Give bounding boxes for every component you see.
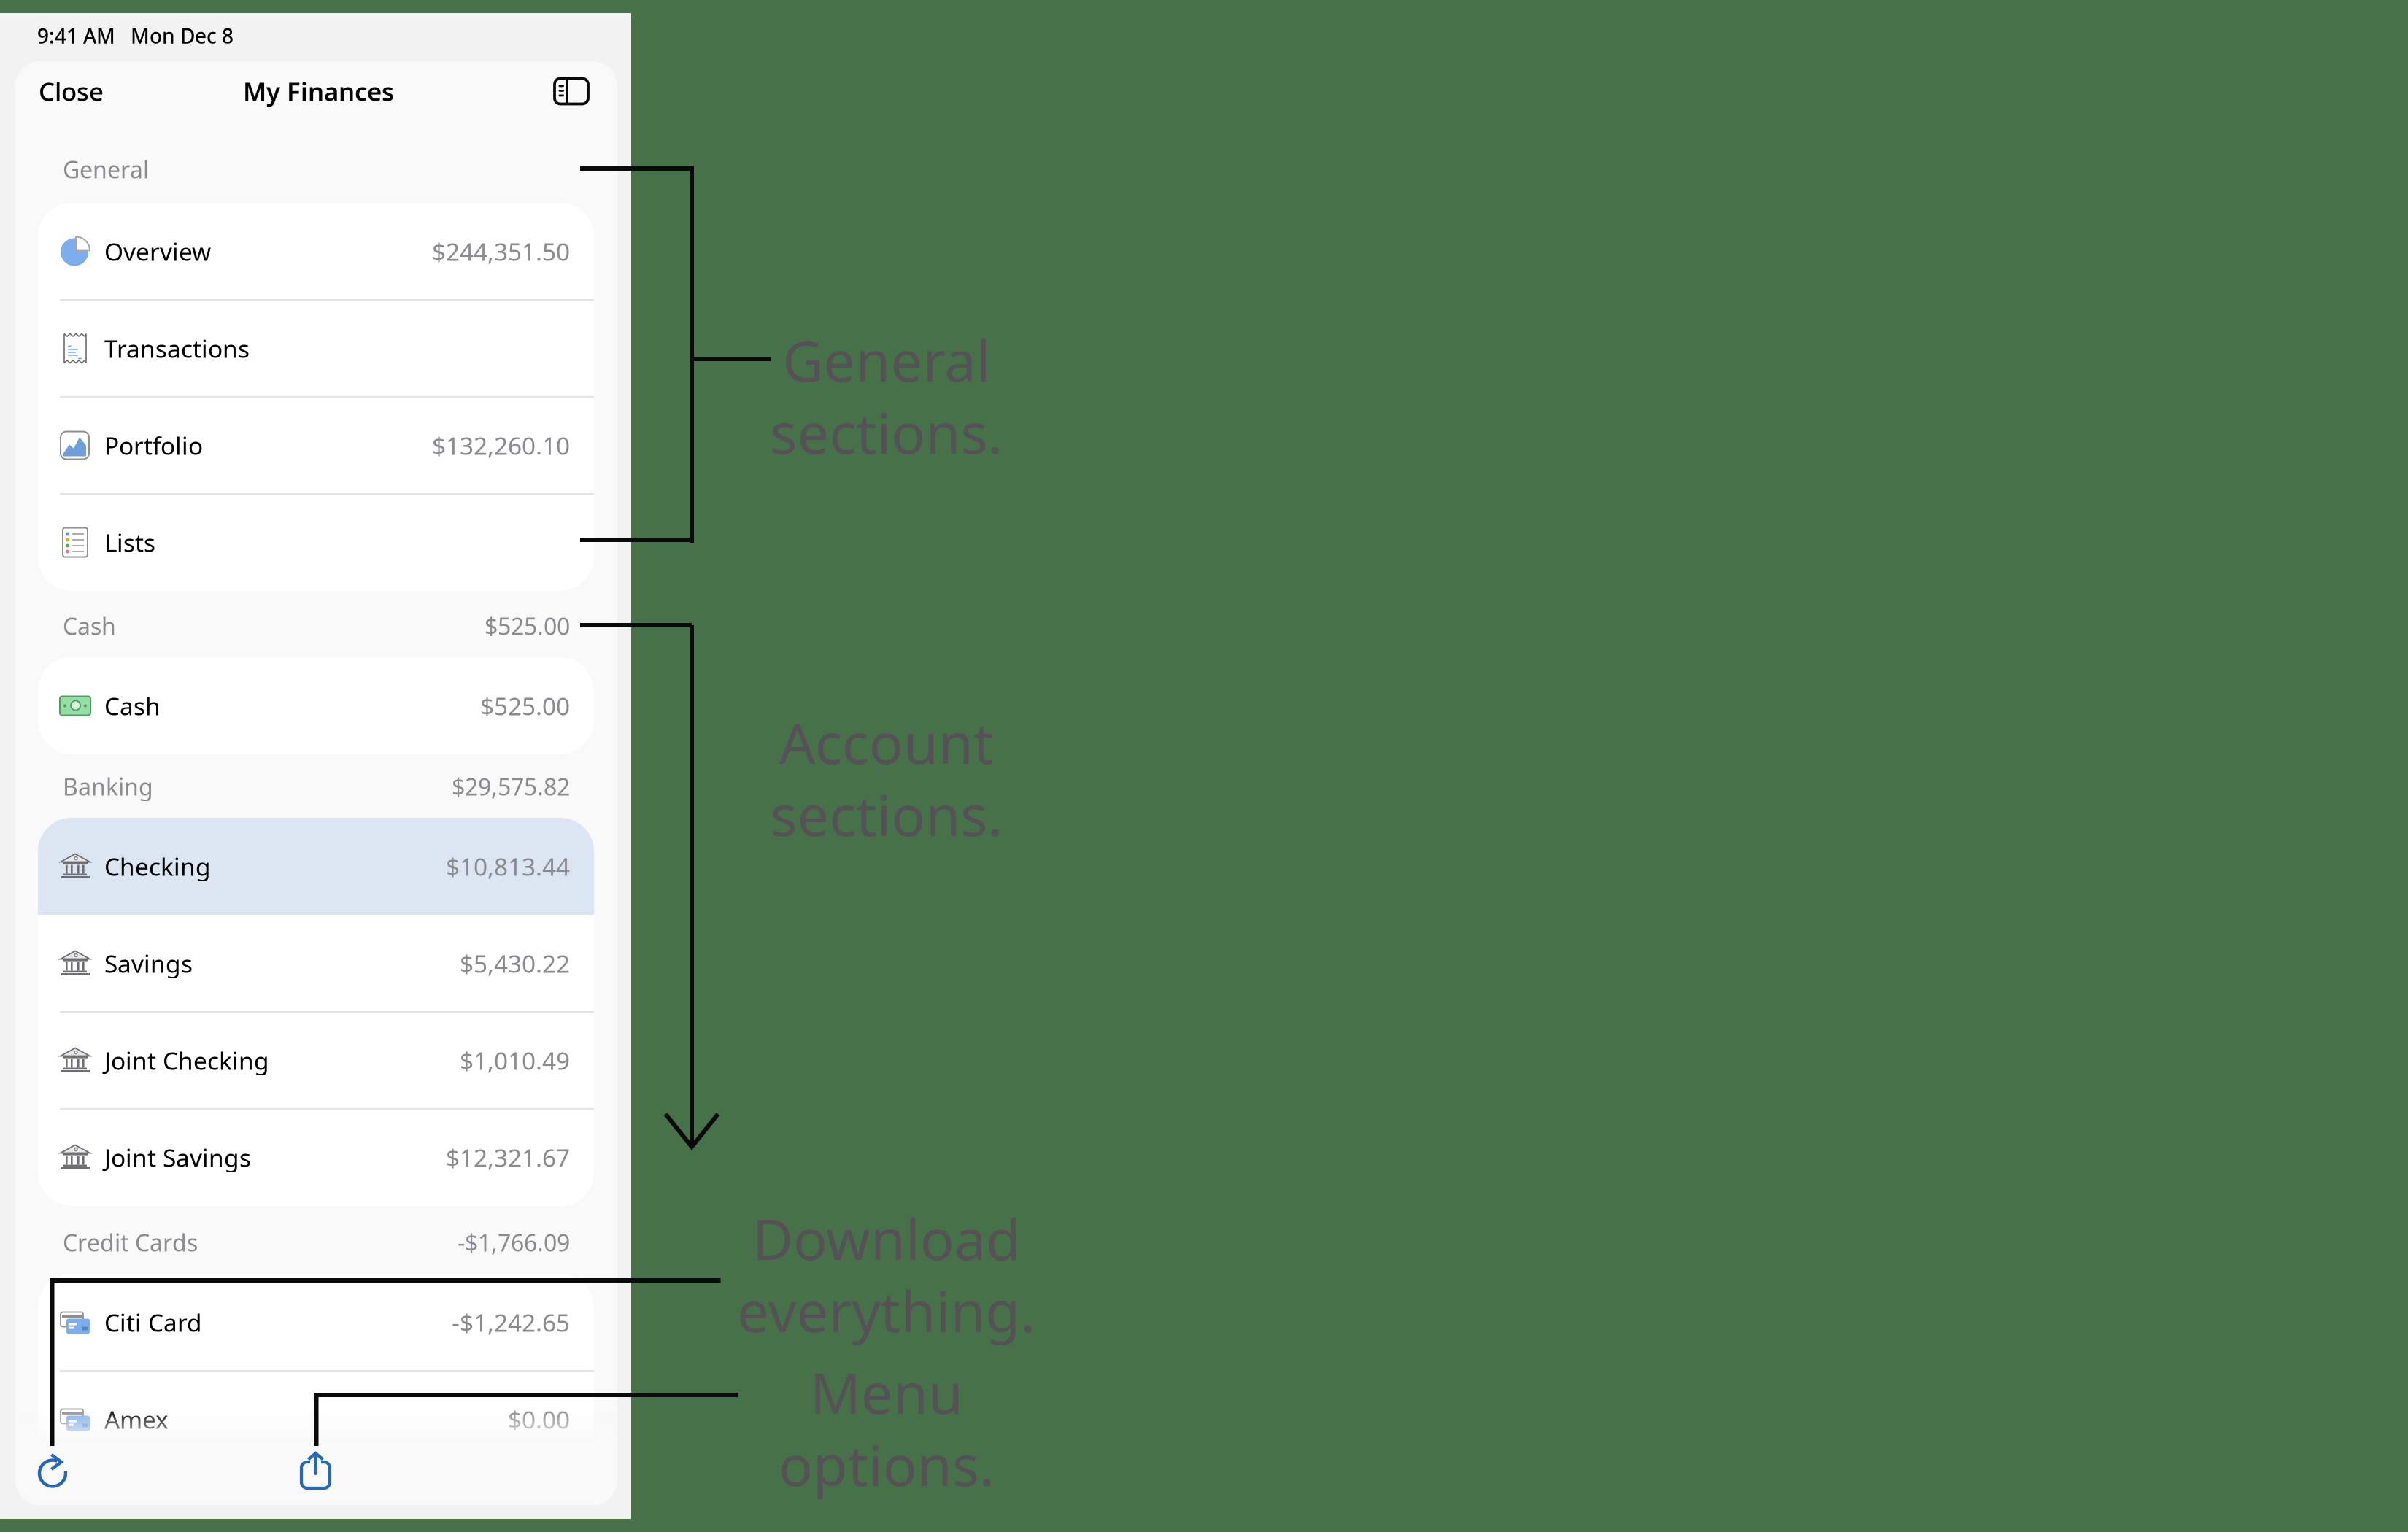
staticText: 9:41 AM Mon Dec 8: [37, 22, 234, 49]
button[interactable]: Cash: [38, 657, 594, 754]
staticText: General: [63, 154, 149, 185]
button[interactable]: Refresh: [0, 13, 631, 1519]
button[interactable]: Close: [0, 13, 631, 1519]
button[interactable]: Citi Card: [38, 1274, 594, 1371]
staticText: Menu: [810, 1355, 963, 1429]
staticText: Banking: [63, 771, 153, 802]
staticText: Cash: [104, 690, 161, 722]
staticText: Savings: [104, 947, 193, 980]
staticText: $525.00: [480, 690, 570, 722]
staticText: General: [783, 322, 991, 397]
staticText: Portfolio: [104, 429, 203, 462]
button[interactable]: Joint Savings: [38, 1109, 594, 1206]
staticText: Transactions: [104, 332, 250, 365]
staticText: $10,813.44: [446, 850, 570, 883]
button[interactable]: Amex: [38, 1371, 594, 1468]
staticText: Close: [39, 74, 104, 108]
button[interactable]: Checking: [38, 818, 594, 915]
button[interactable]: Share: [0, 13, 631, 1519]
staticText: sections.: [770, 394, 1003, 469]
staticText: $5,430.22: [460, 947, 570, 980]
staticText: Citi Card: [104, 1306, 202, 1338]
staticText: Download: [752, 1201, 1021, 1275]
staticText: $0.00: [508, 1403, 570, 1435]
staticText: $244,351.50: [432, 235, 570, 268]
button[interactable]: Joint Checking: [38, 1012, 594, 1109]
button[interactable]: Show sidebar: [0, 13, 631, 1519]
staticText: -$1,766.09: [458, 1227, 570, 1258]
staticText: Lists: [104, 526, 155, 559]
staticText: Account: [779, 705, 994, 779]
staticText: everything.: [737, 1273, 1036, 1348]
staticText: Joint Checking: [104, 1044, 269, 1077]
button[interactable]: Portfolio: [38, 397, 594, 494]
staticText: Credit Cards: [63, 1227, 198, 1258]
staticText: $29,575.82: [452, 771, 570, 802]
staticText: Amex: [104, 1403, 169, 1435]
staticText: sections.: [770, 777, 1003, 852]
staticText: $12,321.67: [446, 1141, 570, 1174]
staticText: options.: [779, 1427, 995, 1502]
button[interactable]: Savings: [38, 915, 594, 1012]
staticText: Checking: [104, 850, 211, 883]
staticText: Joint Savings: [104, 1141, 251, 1174]
staticText: Overview: [104, 235, 211, 268]
staticText: -$1,242.65: [452, 1306, 570, 1338]
staticText: $1,010.49: [460, 1044, 570, 1077]
button[interactable]: Overview: [38, 203, 594, 300]
button[interactable]: Lists: [38, 494, 594, 591]
staticText: $525.00: [485, 610, 570, 641]
staticText: $132,260.10: [432, 429, 570, 462]
staticText: Cash: [63, 610, 116, 641]
button[interactable]: Transactions: [38, 300, 594, 397]
staticText: My Finances: [243, 74, 394, 108]
